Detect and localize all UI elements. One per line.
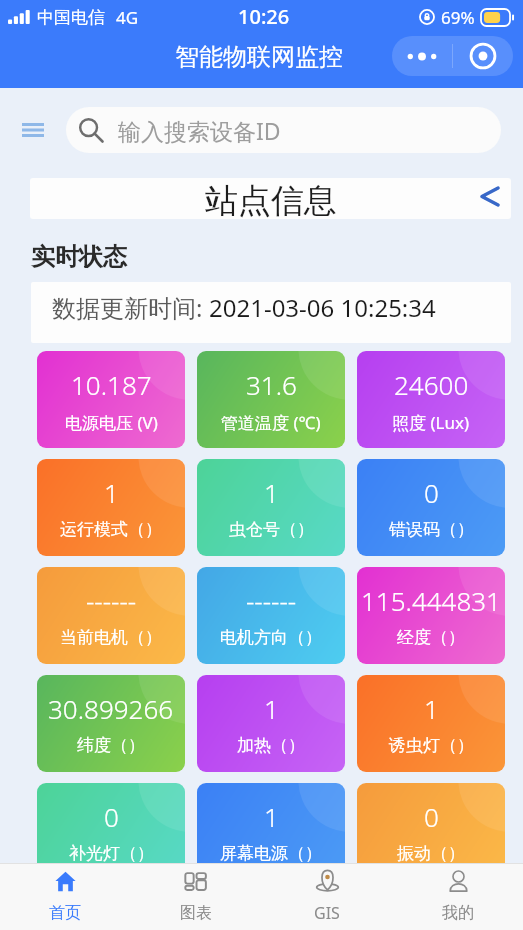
- button[interactable]: 30.899266: [37, 675, 185, 772]
- staticText: 31.6: [246, 367, 297, 402]
- staticText: 数据更新时间:: [52, 291, 203, 324]
- staticText: 实时状态: [31, 242, 127, 272]
- staticText: 中国电信: [37, 7, 105, 28]
- button[interactable]: 首页: [0, 864, 130, 930]
- staticText: 首页: [49, 903, 81, 923]
- staticText: 图表: [180, 903, 212, 923]
- button[interactable]: 图表: [130, 864, 261, 930]
- staticText: 智能物联网监控: [175, 42, 343, 72]
- button[interactable]: 115.444831: [357, 567, 505, 664]
- button[interactable]: 1: [37, 459, 185, 556]
- button[interactable]: Menu: [0, 107, 66, 153]
- button[interactable]: 1: [357, 675, 505, 772]
- button[interactable]: 输入搜索设备ID: [66, 107, 501, 153]
- button[interactable]: 0: [357, 783, 505, 880]
- staticText: 经度（）: [397, 627, 465, 648]
- staticText: 1: [424, 691, 439, 726]
- button[interactable]: 31.6: [197, 351, 345, 448]
- staticText: 69%: [441, 6, 475, 29]
- staticText: GIS: [314, 902, 340, 924]
- button[interactable]: 1: [197, 675, 345, 772]
- button[interactable]: 10.187: [37, 351, 185, 448]
- staticText: 虫仓号（）: [229, 519, 314, 540]
- staticText: 振动（）: [397, 843, 465, 864]
- staticText: 0: [424, 799, 439, 834]
- staticText: 1: [264, 691, 279, 726]
- button[interactable]: ------: [197, 567, 345, 664]
- staticText: 补光灯（）: [69, 843, 154, 864]
- button[interactable]: 站点信息: [30, 178, 511, 219]
- staticText: 错误码（）: [389, 519, 474, 540]
- staticText: 加热（）: [237, 735, 305, 756]
- staticText: 10:26: [238, 3, 290, 30]
- staticText: ------: [86, 583, 137, 618]
- button[interactable]: 1: [197, 783, 345, 880]
- button[interactable]: GIS: [261, 864, 392, 930]
- button[interactable]: 0: [37, 783, 185, 880]
- staticText: 1: [264, 799, 279, 834]
- staticText: 24600: [394, 367, 469, 402]
- button[interactable]: 1: [197, 459, 345, 556]
- button[interactable]: Close: [453, 36, 513, 76]
- staticText: 诱虫灯（）: [389, 735, 474, 756]
- staticText: 115.444831: [361, 583, 501, 618]
- staticText: ------: [246, 583, 297, 618]
- staticText: 站点信息: [205, 180, 337, 219]
- staticText: 1: [264, 475, 279, 510]
- staticText: 电源电压 (V): [65, 411, 158, 434]
- staticText: 输入搜索设备ID: [118, 115, 281, 146]
- button[interactable]: 0: [357, 459, 505, 556]
- staticText: 0: [424, 475, 439, 510]
- button[interactable]: ------: [37, 567, 185, 664]
- staticText: 我的: [442, 903, 474, 923]
- staticText: 当前电机（）: [60, 627, 162, 648]
- staticText: 30.899266: [48, 691, 174, 726]
- button[interactable]: 24600: [357, 351, 505, 448]
- staticText: 4G: [116, 6, 139, 29]
- button[interactable]: More: [392, 36, 452, 76]
- staticText: 照度 (Lux): [392, 411, 470, 434]
- staticText: 1: [104, 475, 119, 510]
- staticText: 电机方向（）: [220, 627, 322, 648]
- staticText: 0: [104, 799, 119, 834]
- staticText: 管道温度 (℃): [221, 411, 321, 434]
- staticText: 运行模式（）: [60, 519, 162, 540]
- staticText: 10.187: [71, 367, 152, 402]
- staticText: 纬度（）: [77, 735, 145, 756]
- staticText: 2021-03-06 10:25:34: [209, 291, 436, 324]
- staticText: 屏幕电源（）: [220, 843, 322, 864]
- button[interactable]: 我的: [392, 864, 523, 930]
